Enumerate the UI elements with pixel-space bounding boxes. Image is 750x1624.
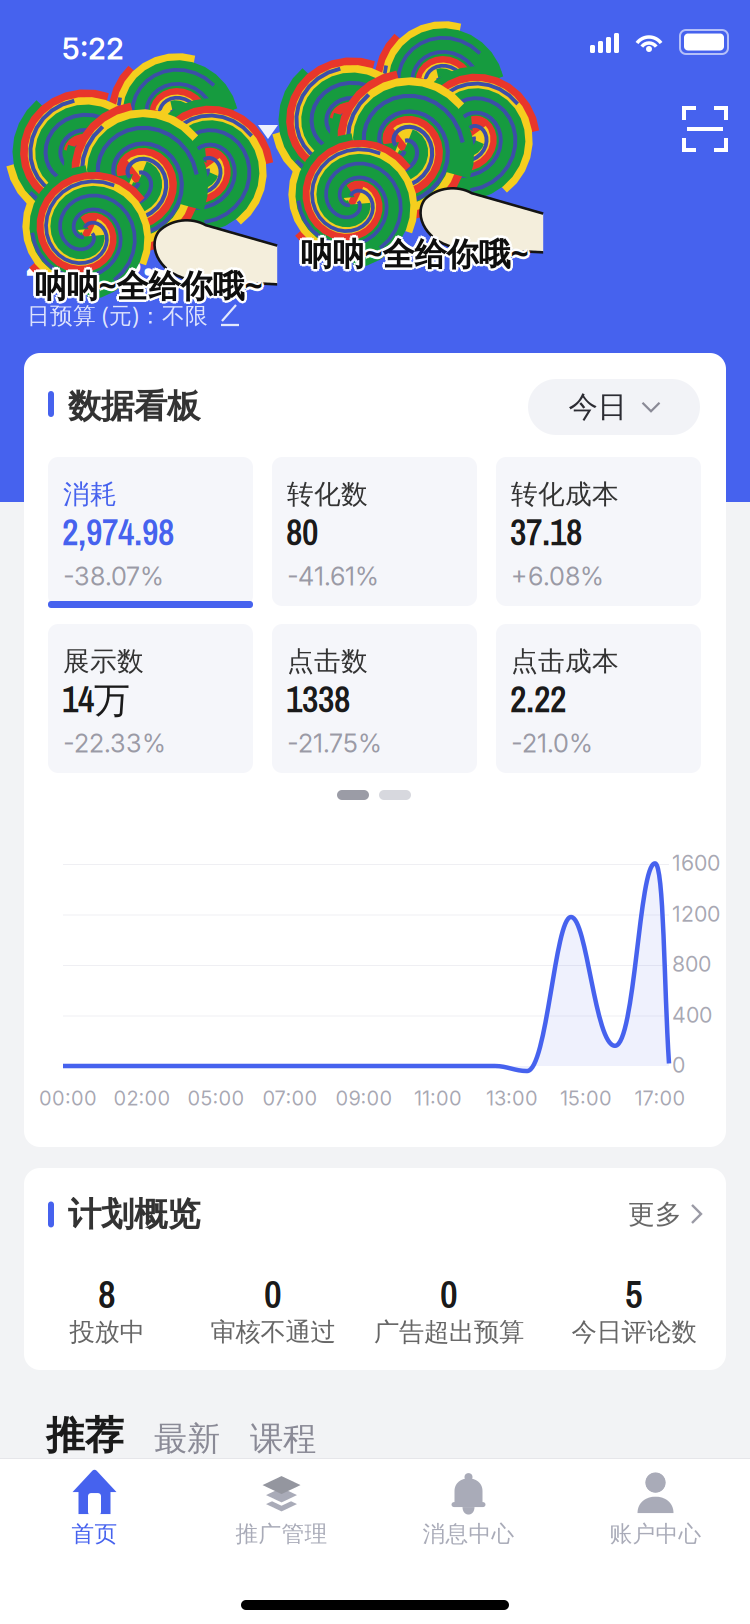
staticText: 0 — [264, 1268, 282, 1320]
staticText: 5:22 — [62, 31, 124, 66]
staticText: 呐呐~全给你哦~ — [300, 232, 528, 274]
staticText: 展示数 — [63, 645, 144, 678]
button[interactable]: 消息中心 — [375, 1461, 562, 1557]
staticText: 2.22 — [510, 675, 566, 723]
staticText: 呐呐~全给你哦~ — [32, 264, 260, 306]
button[interactable]: 首页 — [1, 1461, 188, 1557]
staticText: 05:00 — [187, 1086, 244, 1110]
staticText: 0 — [672, 1052, 685, 1078]
staticText: 呐呐~全给你哦~ — [36, 262, 264, 305]
staticText: 37.18 — [510, 508, 582, 556]
staticText: 800 — [672, 951, 711, 977]
staticText: 呐呐~全给你哦~ — [33, 262, 261, 305]
staticText: 呐呐~全给你哦~ — [300, 229, 528, 272]
staticText: 8 — [98, 1268, 116, 1320]
button[interactable]: 更多 — [628, 1198, 702, 1231]
staticText: 呐呐~全给你哦~ — [34, 261, 262, 304]
staticText: 点击数 — [287, 645, 368, 678]
staticText: 首页 — [71, 1520, 117, 1548]
staticText: 呐呐~全给你哦~ — [302, 234, 530, 276]
staticText: 计划概览 — [68, 1194, 200, 1235]
staticText: 账户余额 (元) — [27, 188, 162, 218]
staticText: 0 — [440, 1268, 458, 1320]
staticText: 账户名称有限公司 — [30, 116, 246, 148]
staticText: 呐呐~全给你哦~ — [300, 235, 528, 277]
staticText: 15:00 — [560, 1086, 612, 1110]
staticText: 400 — [672, 1002, 712, 1028]
staticText: 呐呐~全给你哦~ — [302, 230, 530, 273]
staticText: 消息中心 — [422, 1520, 514, 1548]
button[interactable]: 最新 — [154, 1419, 220, 1459]
staticText: -38.07% — [63, 561, 164, 592]
button[interactable]: 推荐 — [46, 1412, 124, 1459]
staticText: 广告超出预算 — [374, 1316, 524, 1347]
button[interactable]: 点击成本 — [496, 624, 701, 773]
button[interactable]: 点击数 — [272, 624, 477, 773]
staticText: 呐呐~全给你哦~ — [33, 266, 261, 308]
staticText: 2,158.35 — [25, 228, 207, 288]
staticText: -21.75% — [287, 728, 382, 759]
staticText: +6.08% — [511, 561, 604, 592]
button[interactable]: 推广管理 — [188, 1461, 375, 1557]
button[interactable]: 转化成本 — [496, 457, 701, 606]
staticText: 点击成本 — [511, 645, 619, 678]
staticText: 09:00 — [335, 1086, 392, 1110]
button[interactable]: 0 — [356, 1269, 542, 1353]
staticText: 07:00 — [262, 1086, 317, 1110]
button[interactable]: 扫一扫 — [680, 104, 732, 156]
staticText: -22.33% — [63, 728, 166, 759]
staticText: 13:00 — [486, 1086, 538, 1110]
button[interactable]: 日预算 (元)：不限 — [27, 298, 242, 332]
staticText: 5 — [625, 1268, 643, 1320]
staticText: 审核不通过 — [210, 1316, 335, 1347]
staticText: 最新 — [154, 1419, 220, 1459]
staticText: -21.0% — [511, 728, 593, 759]
staticText: 转化数 — [287, 478, 368, 511]
staticText: 2,974.98 — [62, 508, 174, 556]
button[interactable]: 8 — [24, 1269, 190, 1353]
staticText: 1200 — [672, 901, 720, 927]
button[interactable]: 5 — [542, 1269, 726, 1353]
button[interactable]: 课程 — [250, 1419, 316, 1459]
staticText: 今日评论数 — [571, 1316, 696, 1347]
button[interactable]: 消耗 — [48, 457, 253, 606]
staticText: 80 — [286, 508, 318, 556]
staticText: 日预算 (元)：不限 — [27, 300, 208, 330]
staticText: 呐呐~全给你哦~ — [299, 234, 527, 276]
staticText: 呐呐~全给你哦~ — [36, 266, 264, 308]
staticText: 17:00 — [634, 1086, 685, 1110]
button[interactable]: 0 — [190, 1269, 356, 1353]
button[interactable]: 账户名称有限公司 — [30, 110, 278, 154]
staticText: 02:00 — [113, 1086, 170, 1110]
staticText: 消耗 — [63, 478, 117, 511]
staticText: 呐呐~全给你哦~ — [34, 264, 262, 306]
staticText: 课程 — [250, 1419, 316, 1459]
staticText: 账户中心 — [609, 1520, 701, 1548]
staticText: 11:00 — [414, 1086, 462, 1110]
button[interactable]: 转化数 — [272, 457, 477, 606]
staticText: 数据看板 — [68, 386, 200, 427]
staticText: 呐呐~全给你哦~ — [298, 232, 526, 274]
staticText: 1338 — [286, 675, 350, 723]
staticText: -41.61% — [287, 561, 379, 592]
staticText: 今日 — [568, 389, 626, 425]
staticText: 00:00 — [39, 1086, 97, 1110]
button[interactable]: 展示数 — [48, 624, 253, 773]
staticText: 14万 — [62, 675, 130, 723]
staticText: 投放中 — [69, 1316, 144, 1347]
button[interactable]: 今日 — [528, 379, 700, 435]
staticText: 更多 — [628, 1198, 682, 1231]
staticText: 呐呐~全给你哦~ — [299, 230, 527, 273]
staticText: 呐呐~全给你哦~ — [303, 232, 531, 274]
staticText: 呐呐~全给你哦~ — [37, 264, 265, 306]
staticText: 推广管理 — [235, 1520, 327, 1548]
staticText: 推荐 — [46, 1412, 124, 1459]
staticText: 转化成本 — [511, 478, 619, 511]
button[interactable]: 账户中心 — [562, 1461, 749, 1557]
staticText: 1600 — [672, 850, 720, 876]
staticText: 呐呐~全给你哦~ — [34, 267, 262, 309]
